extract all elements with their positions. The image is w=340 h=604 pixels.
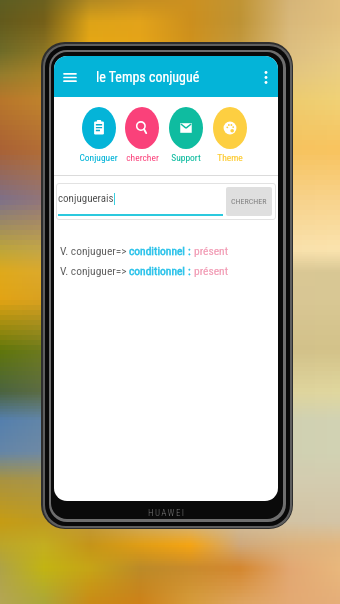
staticText: V. conjuguer=> bbox=[60, 244, 127, 257]
button[interactable]: Support bbox=[164, 97, 208, 163]
button[interactable]: Theme bbox=[208, 97, 252, 163]
button[interactable]: More options bbox=[256, 67, 276, 87]
staticText: le Temps conjugué bbox=[96, 69, 200, 85]
staticText: présent bbox=[194, 244, 229, 257]
staticText: Theme bbox=[217, 152, 243, 163]
staticText: V. conjuguer=> bbox=[60, 264, 127, 277]
staticText: conditionnel bbox=[129, 264, 185, 277]
staticText: Support bbox=[171, 152, 201, 163]
button[interactable]: conjuguerais bbox=[58, 192, 115, 205]
staticText: chercher bbox=[126, 152, 159, 163]
staticText: CHERCHER bbox=[231, 197, 267, 206]
staticText: HUAWEI bbox=[148, 508, 186, 519]
staticText: Conjuguer bbox=[79, 152, 118, 163]
staticText: : bbox=[188, 264, 191, 277]
button[interactable]: Conjuguer bbox=[77, 97, 120, 163]
staticText: conjuguerais bbox=[58, 192, 114, 205]
button[interactable]: Menu bbox=[58, 65, 82, 89]
staticText: présent bbox=[194, 264, 229, 277]
button[interactable]: V. conjuguer=> bbox=[60, 244, 278, 257]
staticText: : bbox=[188, 244, 191, 257]
button[interactable]: chercher bbox=[120, 97, 164, 163]
button[interactable]: CHERCHER bbox=[226, 187, 272, 216]
button[interactable]: V. conjuguer=> bbox=[60, 264, 278, 277]
staticText: conditionnel bbox=[129, 244, 185, 257]
